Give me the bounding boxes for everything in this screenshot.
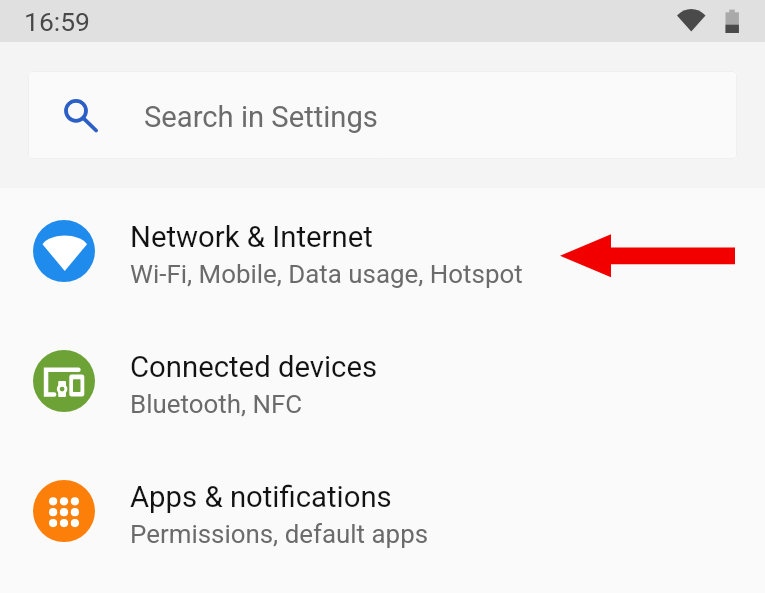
staticText: Bluetooth, NFC (130, 389, 303, 419)
staticText: Apps & notifications (130, 480, 392, 514)
staticText: Search in Settings (144, 100, 378, 134)
staticText: Network & Internet (130, 220, 373, 254)
staticText: Connected devices (130, 350, 378, 384)
button[interactable]: Connected devices (0, 318, 765, 448)
button[interactable]: Search in Settings (28, 71, 737, 159)
staticText: 16:59 (24, 6, 90, 37)
staticText: Wi-Fi, Mobile, Data usage, Hotspot (130, 259, 523, 289)
button[interactable]: Network & Internet (0, 188, 765, 318)
button[interactable]: Apps & notifications (0, 448, 765, 578)
staticText: Permissions, default apps (130, 519, 429, 549)
